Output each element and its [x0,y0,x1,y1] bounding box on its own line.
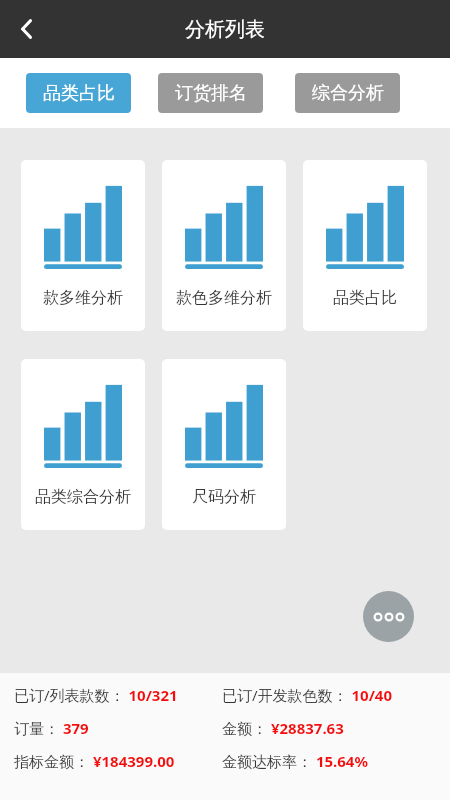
staticText: 已订/开发款色数： 10/40 [222,685,393,705]
button[interactable]: More options [363,591,414,642]
staticText: 款色多维分析 [176,288,272,308]
staticText: 指标金额： ¥184399.00 [14,751,175,771]
staticText: 款多维分析 [43,288,123,308]
button[interactable]: 综合分析 [295,73,400,113]
button[interactable]: Back [0,2,54,56]
button[interactable]: 品类占比 [26,73,131,113]
button[interactable]: 款色多维分析 [162,160,286,331]
staticText: 品类占比 [333,288,397,308]
staticText: 订量： 379 [14,718,89,738]
button[interactable]: 尺码分析 [162,359,286,530]
button[interactable]: 品类占比 [303,160,427,331]
staticText: 品类占比 [43,82,115,105]
staticText: 订货排名 [175,82,247,105]
staticText: 金额： ¥28837.63 [222,718,344,738]
staticText: 尺码分析 [192,487,256,507]
staticText: 综合分析 [312,82,384,105]
button[interactable]: 订货排名 [158,73,263,113]
staticText: 分析列表 [185,17,265,42]
button[interactable]: 款多维分析 [21,160,145,331]
button[interactable]: 品类综合分析 [21,359,145,530]
staticText: 已订/列表款数： 10/321 [14,685,178,705]
staticText: 金额达标率： 15.64% [222,751,368,771]
staticText: 品类综合分析 [35,487,131,507]
